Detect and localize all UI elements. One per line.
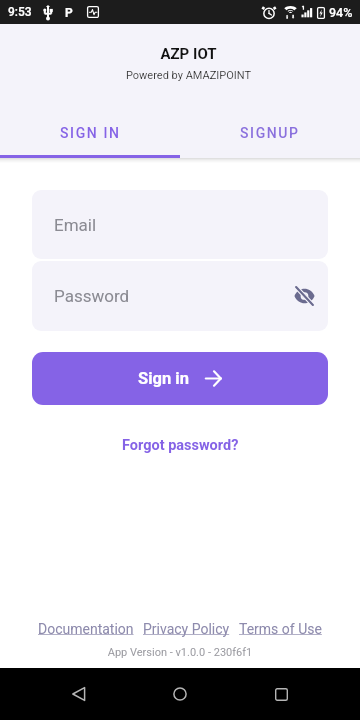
staticText: Documentation bbox=[38, 621, 134, 637]
staticText: SIGNUP bbox=[240, 125, 300, 141]
button[interactable]: Password bbox=[32, 261, 328, 331]
staticText: Password bbox=[54, 286, 130, 306]
staticText: Email bbox=[54, 215, 97, 235]
staticText: Terms of Use bbox=[239, 621, 322, 637]
button[interactable]: Forgot password? bbox=[116, 434, 245, 457]
button[interactable]: Home bbox=[158, 672, 202, 716]
staticText: 94% bbox=[329, 5, 353, 20]
staticText: Forgot password? bbox=[122, 437, 239, 454]
button[interactable]: Show password bbox=[285, 277, 323, 315]
button[interactable]: SIGNUP bbox=[180, 117, 360, 148]
button[interactable]: Email bbox=[32, 190, 328, 259]
staticText: Powered by AMAZIPOINT bbox=[17, 69, 360, 82]
button[interactable]: Back bbox=[57, 672, 101, 716]
staticText: AZP IOT bbox=[17, 45, 360, 63]
button[interactable]: Recent apps bbox=[259, 672, 303, 716]
button[interactable]: Sign in bbox=[32, 352, 328, 405]
staticText: Sign in bbox=[138, 369, 189, 388]
button[interactable]: Privacy Policy bbox=[143, 621, 230, 637]
staticText: Privacy Policy bbox=[143, 621, 230, 637]
button[interactable]: SIGN IN bbox=[0, 117, 180, 148]
button[interactable]: Documentation bbox=[38, 621, 134, 637]
staticText: P bbox=[65, 6, 73, 19]
button[interactable]: Terms of Use bbox=[239, 621, 322, 637]
staticText: App Version - v1.0.0 - 230f6f1 bbox=[0, 646, 360, 659]
staticText: SIGN IN bbox=[60, 125, 121, 141]
staticText: 9:53 bbox=[8, 5, 32, 19]
